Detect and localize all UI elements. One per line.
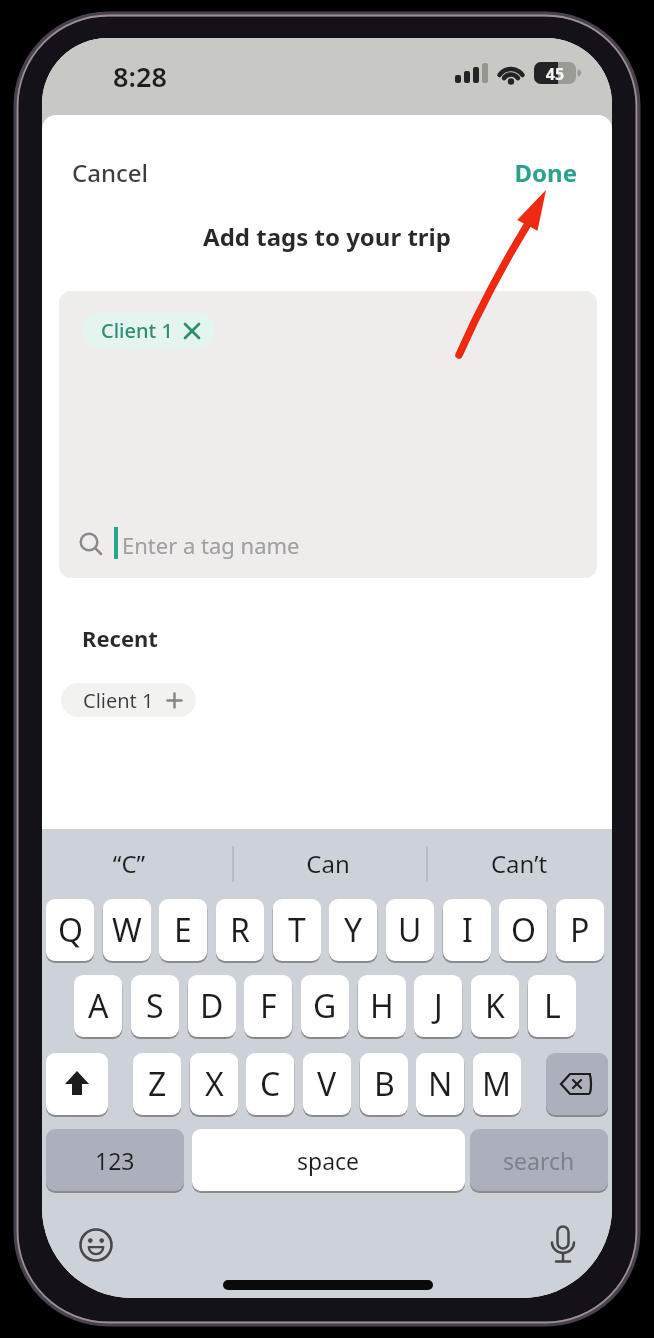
button[interactable]: O — [499, 899, 547, 961]
staticText: space — [297, 1145, 360, 1176]
staticText: E — [174, 908, 192, 952]
staticText: X — [205, 1062, 224, 1106]
staticText: U — [398, 908, 422, 952]
button[interactable]: R — [216, 899, 264, 961]
button[interactable]: M — [473, 1053, 521, 1115]
staticText: Done — [489, 156, 577, 189]
button[interactable]: P — [556, 899, 604, 961]
staticText: Client 1 — [101, 317, 173, 344]
staticText: 123 — [95, 1145, 135, 1176]
staticText: L — [544, 984, 561, 1028]
button[interactable]: U — [386, 899, 434, 961]
button[interactable]: S — [131, 975, 179, 1037]
staticText: W — [112, 908, 142, 952]
button[interactable]: space — [192, 1129, 465, 1191]
button[interactable]: H — [358, 975, 406, 1037]
button[interactable]: V — [303, 1053, 351, 1115]
button[interactable]: N — [416, 1053, 464, 1115]
staticText: O — [511, 908, 536, 952]
staticText: Q — [58, 908, 83, 952]
button[interactable]: K — [471, 975, 519, 1037]
staticText: “C” — [79, 847, 179, 880]
button[interactable]: 8:28 — [104, 58, 176, 88]
staticText: H — [370, 984, 394, 1028]
staticText: M — [482, 1062, 512, 1106]
button[interactable]: J — [414, 975, 462, 1037]
staticText: Can’t — [469, 847, 569, 880]
staticText: Y — [344, 908, 363, 952]
button[interactable]: Client 1 — [82, 312, 215, 349]
button[interactable]: “C” — [79, 847, 179, 880]
staticText: Can — [278, 847, 378, 880]
staticText: F — [260, 984, 277, 1028]
button[interactable]: Q — [46, 899, 94, 961]
button[interactable]: Client 1 — [61, 683, 196, 717]
staticText: search — [503, 1145, 575, 1176]
staticText: G — [313, 984, 337, 1028]
button[interactable]: Can — [278, 847, 378, 880]
button[interactable]: W — [103, 899, 151, 961]
staticText: Enter a tag name — [122, 530, 300, 560]
staticText: T — [288, 908, 306, 952]
staticText: Add tags to your trip — [42, 220, 612, 253]
button[interactable]: F — [244, 975, 292, 1037]
button[interactable]: A — [74, 975, 122, 1037]
staticText: C — [260, 1062, 281, 1106]
button[interactable]: Cancel — [72, 156, 149, 189]
button[interactable]: D — [188, 975, 236, 1037]
staticText: J — [434, 984, 443, 1028]
staticText: 45 — [534, 63, 576, 85]
button[interactable]: C — [246, 1053, 294, 1115]
staticText: Recent — [82, 623, 158, 653]
staticText: S — [146, 984, 164, 1028]
staticText: 8:28 — [104, 58, 176, 88]
staticText: Z — [148, 1062, 167, 1106]
staticText: N — [428, 1062, 453, 1106]
button[interactable]: T — [273, 899, 321, 961]
staticText: P — [570, 908, 590, 952]
button[interactable]: I — [443, 899, 491, 961]
staticText: A — [88, 984, 109, 1028]
staticText: R — [230, 908, 250, 952]
button[interactable]: Y — [329, 899, 377, 961]
staticText: I — [462, 908, 473, 952]
staticText: V — [317, 1062, 337, 1106]
button[interactable]: B — [360, 1053, 408, 1115]
button[interactable]: 123 — [46, 1129, 184, 1191]
staticText: K — [485, 984, 505, 1028]
button[interactable]: Z — [133, 1053, 181, 1115]
button[interactable]: G — [301, 975, 349, 1037]
button[interactable]: Can’t — [469, 847, 569, 880]
staticText: D — [200, 984, 224, 1028]
staticText: B — [374, 1062, 395, 1106]
button[interactable]: Enter a tag name — [122, 530, 300, 560]
button[interactable]: search — [470, 1129, 608, 1191]
button[interactable]: X — [190, 1053, 238, 1115]
staticText: Client 1 — [83, 687, 154, 714]
button[interactable] — [546, 1053, 608, 1115]
button[interactable]: Done — [489, 156, 577, 189]
button[interactable]: E — [159, 899, 207, 961]
staticText: Cancel — [72, 156, 149, 189]
button[interactable] — [46, 1053, 108, 1115]
button[interactable]: L — [528, 975, 576, 1037]
